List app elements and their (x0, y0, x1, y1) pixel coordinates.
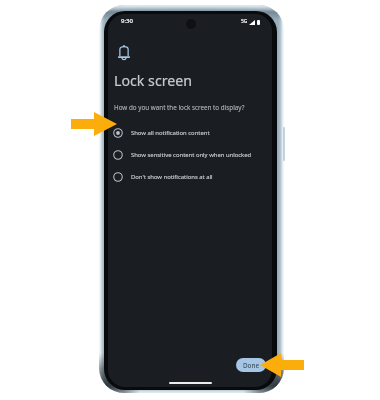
other: Pointer to notification option (71, 112, 117, 136)
button[interactable]: Show sensitive content only when unlocke… (113, 144, 252, 166)
staticText: Show sensitive content only when unlocke… (131, 151, 252, 159)
other: Notifications (118, 45, 130, 60)
button[interactable]: Show all notification content (113, 122, 210, 144)
button[interactable]: Done (236, 358, 266, 372)
staticText: Don't show notifications at all (131, 173, 213, 181)
staticText: 5G (241, 18, 248, 25)
other: Pointer to Done button (260, 353, 304, 377)
button[interactable]: Don't show notifications at all (113, 166, 213, 188)
staticText: Show all notification content (131, 129, 210, 137)
staticText: How do you want the lock screen to displ… (114, 103, 245, 112)
staticText: Lock screen (114, 71, 193, 90)
staticText: Done (243, 361, 260, 370)
staticText: 9:30 (121, 17, 133, 25)
